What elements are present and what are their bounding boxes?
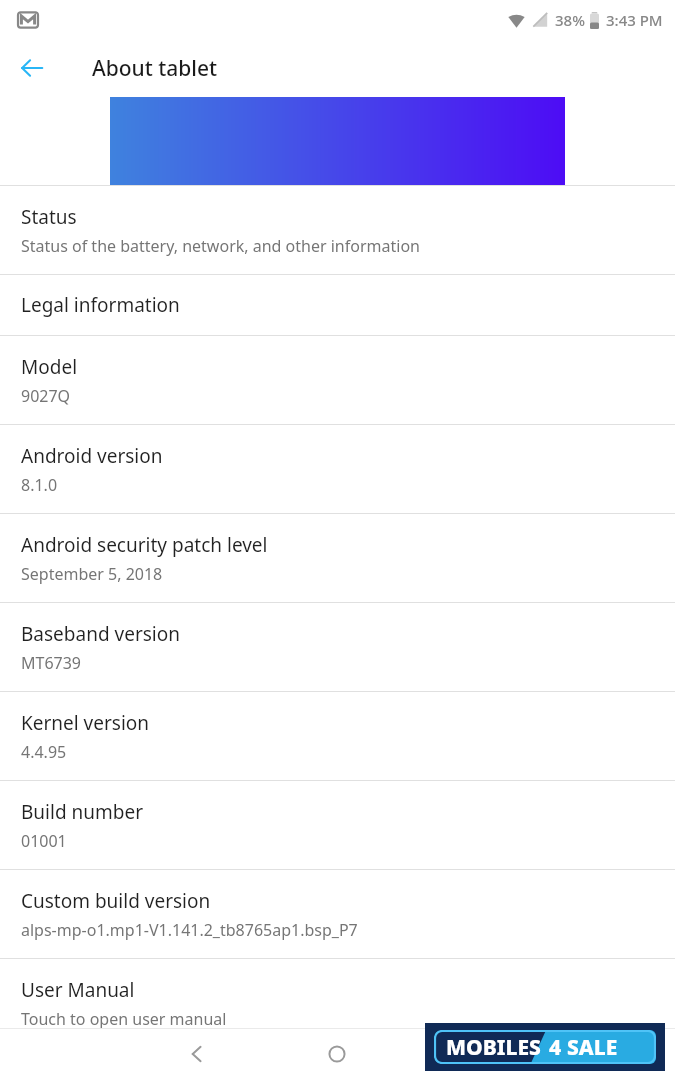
staticText: Status of the battery, network, and othe… xyxy=(21,235,420,257)
staticText: 9027Q xyxy=(21,385,71,407)
button[interactable]: Back xyxy=(8,44,56,92)
button[interactable]: User Manual xyxy=(0,959,675,1047)
staticText: Model xyxy=(21,354,78,380)
staticText: 8.1.0 xyxy=(21,474,58,496)
button[interactable]: Android security patch level xyxy=(0,514,675,602)
staticText: User Manual xyxy=(21,977,135,1003)
staticText: Legal information xyxy=(21,292,180,318)
button[interactable]: Legal information xyxy=(0,275,675,335)
button[interactable]: Back xyxy=(173,1030,221,1078)
staticText: Status xyxy=(21,204,77,230)
staticText: SALE xyxy=(567,1033,618,1062)
button[interactable]: Model xyxy=(0,336,675,424)
staticText: alps-mp-o1.mp1-V1.141.2_tb8765ap1.bsp_P7 xyxy=(21,919,358,941)
staticText: MT6739 xyxy=(21,652,82,674)
button[interactable]: Custom build version xyxy=(0,870,675,958)
staticText: Baseband version xyxy=(21,621,180,647)
button[interactable]: Build number xyxy=(0,781,675,869)
staticText: MOBILES xyxy=(446,1033,541,1062)
staticText: Android version xyxy=(21,443,163,469)
staticText: 01001 xyxy=(21,830,67,852)
button[interactable]: Home xyxy=(313,1030,361,1078)
staticText: September 5, 2018 xyxy=(21,563,163,585)
staticText: Custom build version xyxy=(21,888,211,914)
staticText: 4 xyxy=(549,1033,562,1062)
staticText: Build number xyxy=(21,799,144,825)
button[interactable]: Kernel version xyxy=(0,692,675,780)
button[interactable]: Baseband version xyxy=(0,603,675,691)
staticText: Android security patch level xyxy=(21,532,268,558)
button[interactable]: Android version xyxy=(0,425,675,513)
button[interactable]: Status xyxy=(0,186,675,274)
staticText: 38% xyxy=(555,10,585,30)
staticText: 3:43 PM xyxy=(606,10,663,30)
staticText: 4.4.95 xyxy=(21,741,67,763)
staticText: Touch to open user manual xyxy=(21,1008,227,1030)
staticText: About tablet xyxy=(92,54,218,83)
staticText: Kernel version xyxy=(21,710,150,736)
